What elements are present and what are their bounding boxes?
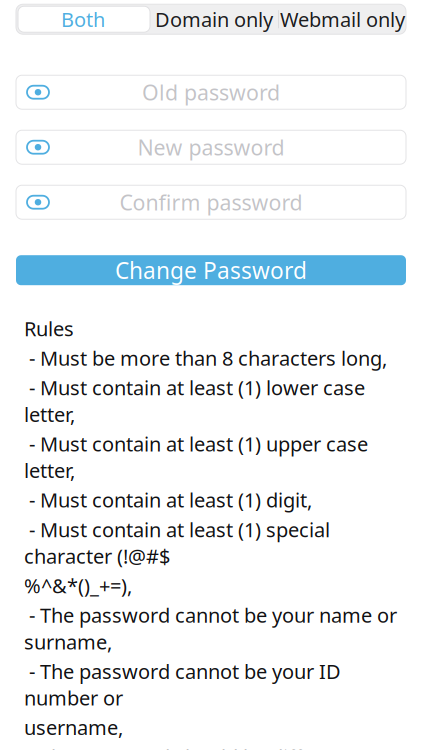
staticText: - The password cannot be your ID number … bbox=[24, 658, 341, 711]
staticText: %^&*()_+=), bbox=[24, 572, 132, 599]
staticText: - Must be more than 8 characters long, bbox=[24, 345, 387, 371]
staticText: Confirm password bbox=[119, 188, 302, 216]
staticText: - Must contain at least (1) digit, bbox=[24, 487, 312, 513]
staticText: New password bbox=[137, 133, 284, 161]
staticText: - The password should be different from … bbox=[24, 744, 351, 750]
button[interactable]: Change Password bbox=[16, 255, 406, 285]
button[interactable]: Show Old password bbox=[16, 75, 60, 109]
button[interactable]: Domain only bbox=[150, 4, 278, 34]
staticText: username, bbox=[24, 714, 123, 741]
staticText: Old password bbox=[142, 78, 280, 106]
button[interactable]: Webmail only bbox=[279, 4, 406, 34]
staticText: Both bbox=[61, 6, 105, 32]
staticText: - Must contain at least (1) special char… bbox=[24, 516, 330, 569]
button[interactable]: Both bbox=[16, 4, 150, 34]
staticText: - Must contain at least (1) lower case l… bbox=[24, 374, 365, 427]
staticText: Change Password bbox=[115, 255, 307, 285]
staticText: - The password cannot be your name or su… bbox=[24, 602, 397, 655]
staticText: - Must contain at least (1) upper case l… bbox=[24, 430, 368, 484]
button[interactable]: Show New password bbox=[16, 130, 60, 164]
button[interactable]: Show Confirm password bbox=[16, 185, 60, 219]
staticText: Rules bbox=[24, 315, 74, 342]
staticText: Domain only bbox=[155, 6, 273, 32]
staticText: Webmail only bbox=[280, 6, 405, 32]
